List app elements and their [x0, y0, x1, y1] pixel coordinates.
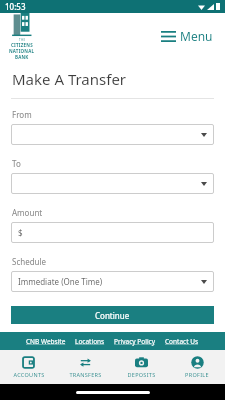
button[interactable]: Select option — [11, 173, 214, 194]
button[interactable]: Continue — [11, 306, 214, 324]
staticText: 10:53 — [5, 1, 26, 12]
staticText: CNB Website — [26, 337, 66, 346]
staticText: Make A Transfer — [12, 69, 127, 89]
staticText: CITIZENS — [11, 42, 33, 48]
staticText: TRANSFERS — [69, 371, 102, 378]
button[interactable]: The Citizens National Bank home — [9, 13, 35, 59]
button[interactable]: Contact Us — [165, 337, 199, 346]
button[interactable]: Privacy Policy — [114, 337, 156, 346]
staticText: DEPOSITS — [127, 371, 156, 378]
staticText: Locations — [75, 337, 105, 346]
button[interactable]: Amount input — [11, 222, 214, 243]
staticText: Contact Us — [165, 337, 199, 346]
button[interactable]: ACCOUNTS — [0, 350, 57, 384]
staticText: BANK — [15, 54, 29, 59]
staticText: ACCOUNTS — [13, 371, 45, 378]
button[interactable]: Menu — [161, 28, 213, 44]
button[interactable]: Select option — [11, 124, 214, 145]
button[interactable]: DEPOSITS — [113, 350, 169, 384]
staticText: THE — [19, 38, 26, 42]
staticText: To — [12, 158, 21, 169]
button[interactable]: Locations — [75, 337, 105, 346]
button[interactable]: CNB Website — [26, 337, 66, 346]
staticText: From — [12, 109, 32, 120]
staticText: $ — [18, 227, 23, 238]
staticText: Schedule — [12, 256, 47, 267]
staticText: Privacy Policy — [114, 337, 156, 346]
button[interactable]: Select option — [11, 271, 214, 292]
staticText: Immediate (One Time) — [18, 276, 103, 287]
staticText: NATIONAL — [9, 48, 35, 54]
staticText: Amount — [12, 207, 43, 218]
staticText: PROFILE — [185, 371, 209, 378]
staticText: Menu — [180, 28, 213, 44]
button[interactable]: TRANSFERS — [57, 350, 113, 384]
staticText: Continue — [95, 310, 130, 321]
button[interactable]: PROFILE — [169, 350, 225, 384]
